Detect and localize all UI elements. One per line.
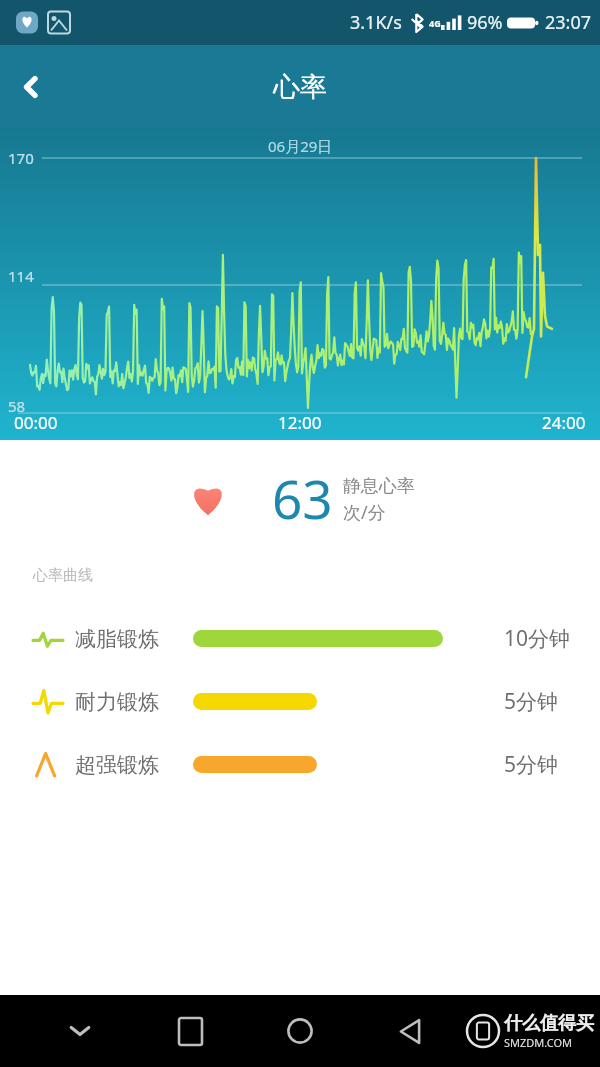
staticText: 减脂锻炼 [75,626,185,652]
staticText: 5分钟 [504,750,586,779]
button[interactable]: Back [380,1001,440,1061]
staticText: 3.1K/s [350,10,402,35]
staticText: 什么值得买 [504,1012,594,1035]
staticText: 耐力锻炼 [75,689,185,715]
staticText: 170 [8,148,34,168]
button[interactable]: Hide navigation bar [50,1001,110,1061]
button[interactable]: 耐力锻炼 [0,670,600,733]
staticText: 次/分 [343,500,386,525]
staticText: 00:00 [14,411,58,434]
staticText: 超强锻炼 [75,752,185,778]
staticText: 12:00 [278,411,322,434]
staticText: 24:00 [542,411,586,434]
staticText: 心率曲线 [33,566,93,585]
staticText: 4G [429,17,441,29]
staticText: 10分钟 [504,624,586,653]
button[interactable]: 超强锻炼 [0,733,600,796]
button[interactable]: 减脂锻炼 [0,607,600,670]
button[interactable]: Recent apps [160,1001,220,1061]
staticText: 23:07 [545,10,592,35]
staticText: 5分钟 [504,687,586,716]
staticText: SMZDM.COM [504,1035,573,1050]
staticText: 06月29日 [268,136,333,156]
staticText: 静息心率 [343,475,415,498]
button[interactable]: Back [0,56,62,118]
staticText: 63 [272,462,333,534]
button[interactable]: Home [270,1001,330,1061]
staticText: 心率 [273,70,327,104]
staticText: 114 [8,266,34,286]
staticText: 58 [8,396,26,416]
staticText: 96% [467,10,503,35]
